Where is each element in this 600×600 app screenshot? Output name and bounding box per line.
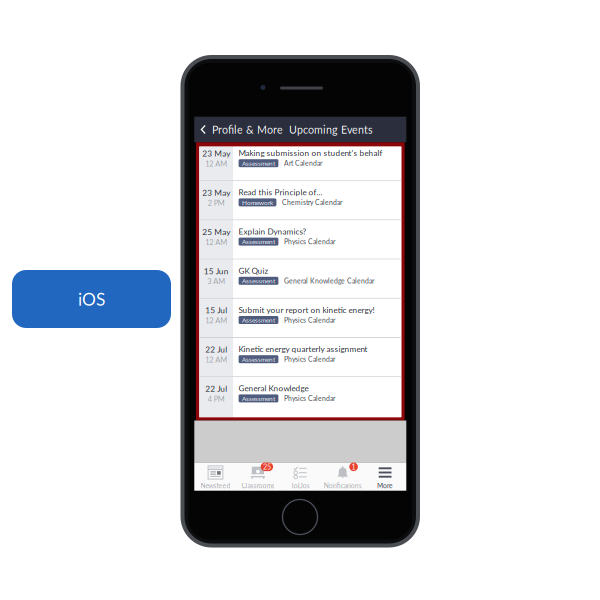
staticText: Read this Principle of... — [239, 187, 323, 197]
staticText: 12 AM — [205, 159, 227, 168]
staticText: Homework — [242, 199, 273, 206]
staticText: Assessment — [242, 238, 275, 245]
staticText: 15 Jun — [204, 266, 229, 276]
staticText: 4 PM — [208, 394, 225, 403]
staticText: Classrooms — [241, 482, 274, 490]
staticText: General Knowledge — [239, 383, 309, 393]
button[interactable]: 1 — [321, 462, 364, 491]
button[interactable]: 23 May — [199, 147, 401, 181]
staticText: Physics Calendar — [284, 355, 335, 363]
button[interactable]: 15 Jun — [199, 260, 401, 299]
staticText: Submit your report on kinetic energy! — [239, 305, 375, 315]
button[interactable]: iOS — [8, 266, 175, 332]
staticText: Explain Dynamics? — [239, 226, 307, 236]
staticText: 25 May — [202, 227, 230, 237]
staticText: 22 Jul — [205, 344, 227, 354]
staticText: 2 PM — [208, 198, 225, 207]
button[interactable]: ToDos — [279, 462, 321, 491]
staticText: Chemistry Calendar — [282, 198, 342, 206]
staticText: Assessment — [242, 355, 275, 363]
staticText: Physics Calendar — [284, 316, 335, 324]
button[interactable]: Profile & More — [194, 117, 283, 142]
staticText: ToDos — [291, 482, 310, 490]
button[interactable]: 15 Jul — [199, 299, 401, 338]
staticText: 1 — [352, 462, 356, 471]
staticText: GK Quiz — [239, 266, 269, 275]
staticText: 23 May — [202, 188, 230, 197]
button[interactable]: More — [364, 462, 406, 491]
button[interactable]: 23 May — [199, 181, 401, 220]
staticText: Making submission on student's behalf — [239, 148, 383, 158]
staticText: Physics Calendar — [284, 394, 335, 402]
staticText: 22 Jul — [205, 384, 227, 393]
staticText: Profile & More — [206, 123, 283, 136]
staticText: Assessment — [242, 316, 275, 324]
staticText: Art Calendar — [284, 159, 322, 167]
staticText: Assessment — [242, 277, 275, 285]
staticText: Kinetic energy quarterly assignment — [239, 344, 368, 354]
staticText: General Knowledge Calendar — [284, 277, 374, 285]
staticText: 25 — [263, 462, 271, 471]
staticText: More — [377, 482, 393, 490]
staticText: 12 AM — [205, 316, 227, 325]
button[interactable]: 25 May — [199, 220, 401, 260]
button[interactable]: 22 Jul — [199, 338, 401, 377]
staticText: iOS — [78, 289, 105, 309]
staticText: Assessment — [242, 159, 275, 167]
staticText: 15 Jul — [205, 305, 227, 315]
button[interactable]: 25 — [237, 462, 279, 491]
staticText: Upcoming Events — [283, 123, 373, 136]
staticText: 3 AM — [207, 277, 225, 286]
button[interactable]: Newsfeed — [194, 462, 237, 491]
staticText: Newsfeed — [200, 482, 230, 490]
staticText: Physics Calendar — [284, 237, 335, 246]
staticText: 12 AM — [205, 237, 227, 246]
staticText: Assessment — [242, 395, 275, 402]
staticText: 23 May — [202, 148, 230, 158]
staticText: 12 AM — [205, 355, 227, 364]
staticText: Notifications — [324, 482, 362, 490]
button[interactable]: 22 Jul — [199, 377, 401, 417]
